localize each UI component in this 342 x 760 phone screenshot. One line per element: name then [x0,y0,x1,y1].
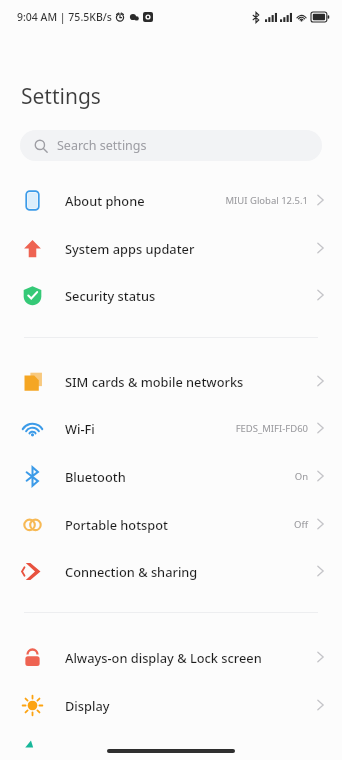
staticText: Connection & sharing [65,563,198,580]
button[interactable]: Security status [0,271,342,319]
staticText: 9:04 AM | 75.5KB/s [17,10,112,24]
staticText: Search settings [57,137,147,154]
staticText: Security status [65,287,156,304]
staticText: Bluetooth [65,468,126,485]
button[interactable]: Display [0,681,342,729]
button[interactable]: Wi-Fi [0,404,342,452]
staticText: Display [65,697,110,714]
button[interactable]: System apps updater [0,224,342,272]
staticText: Always-on display & Lock screen [65,649,262,666]
button[interactable]: Portable hotspot [0,500,342,548]
button[interactable]: Search settings [20,130,322,161]
staticText: Settings [21,82,101,111]
button[interactable]: Connection & sharing [0,547,342,595]
button[interactable]: Bluetooth [0,452,342,500]
button[interactable]: SIM cards & mobile networks [0,357,342,405]
staticText: Wi-Fi [65,420,95,437]
staticText: On [294,470,308,483]
staticText: Portable hotspot [65,516,168,533]
staticText: System apps updater [65,240,195,257]
staticText: FEDS_MIFI-FD60 [235,422,308,435]
staticText: MIUI Global 12.5.1 [225,194,308,207]
button[interactable]: Always-on display & Lock screen [0,633,342,681]
staticText: Off [294,518,308,531]
button[interactable]: About phone [0,176,342,224]
staticText: SIM cards & mobile networks [65,373,244,390]
staticText: About phone [65,192,145,209]
